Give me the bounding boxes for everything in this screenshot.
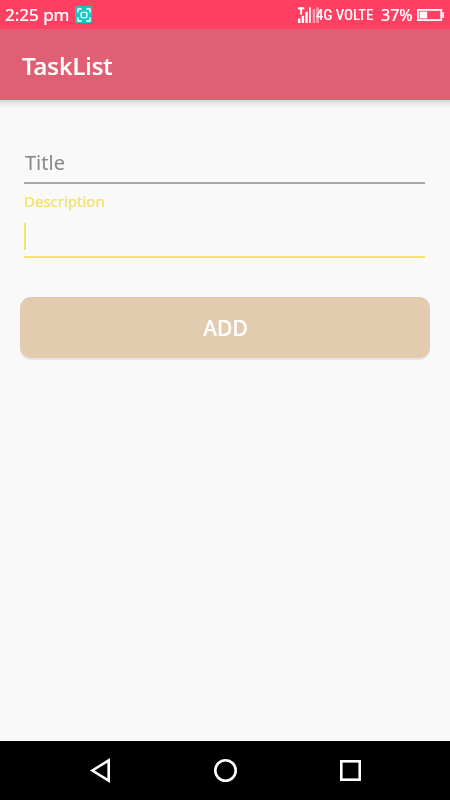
button[interactable]: Back	[62, 741, 138, 800]
button[interactable]: Description	[24, 190, 425, 258]
staticText: TaskList	[22, 49, 113, 82]
staticText: 4G VOLTE	[316, 6, 374, 24]
staticText: Title	[25, 149, 65, 176]
staticText: ADD	[203, 314, 248, 343]
staticText: 37%	[381, 4, 413, 26]
button[interactable]: ADD	[20, 297, 430, 358]
button[interactable]: Title	[24, 136, 425, 183]
button[interactable]: Home	[187, 741, 263, 800]
staticText: 2:25 pm	[5, 3, 70, 26]
button[interactable]: Recent apps	[312, 741, 388, 800]
staticText: Description	[24, 191, 105, 211]
